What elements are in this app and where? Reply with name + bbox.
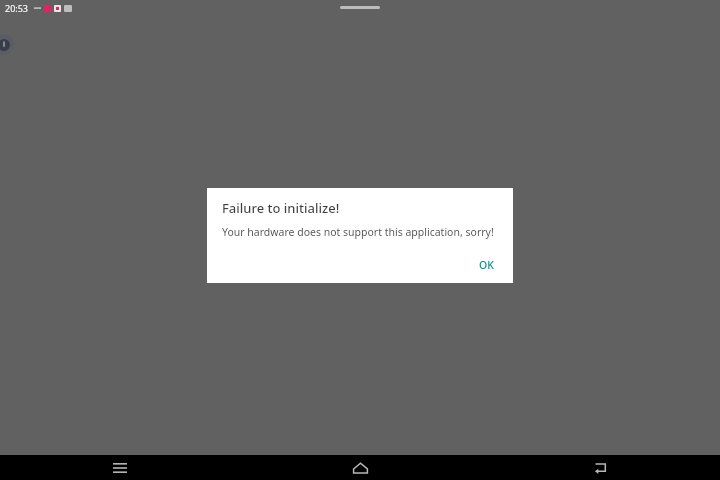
staticText: OK [479, 258, 494, 272]
staticText: 20:53 [5, 2, 29, 14]
staticText: Your hardware does not support this appl… [222, 225, 494, 239]
button[interactable]: Back [576, 455, 624, 480]
button[interactable]: Menu [96, 455, 144, 480]
button[interactable]: Floating assistant bubble [0, 34, 14, 55]
staticText: Failure to initialize! [222, 199, 340, 217]
button[interactable]: OK [471, 254, 502, 276]
button[interactable]: Home [336, 455, 384, 480]
